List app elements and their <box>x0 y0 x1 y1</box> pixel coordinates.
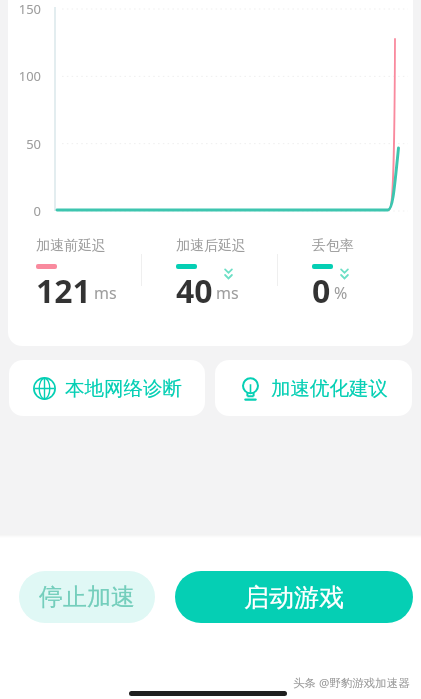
staticText: 加速后延迟 <box>176 237 246 255</box>
staticText: 本地网络诊断 <box>65 376 182 401</box>
staticText: 启动游戏 <box>244 582 344 613</box>
staticText: 丢包率 <box>312 237 354 255</box>
staticText: 150 <box>8 0 41 18</box>
button[interactable]: 停止加速 <box>19 571 155 623</box>
staticText: 0 <box>312 269 331 313</box>
button[interactable]: 加速优化建议 <box>215 360 412 416</box>
button[interactable]: 本地网络诊断 <box>9 360 205 416</box>
staticText: 40 <box>176 269 213 313</box>
staticText: % <box>334 282 348 304</box>
staticText: ms <box>216 282 239 304</box>
staticText: 头条 @野豹游戏加速器 <box>293 675 410 691</box>
staticText: 停止加速 <box>39 582 135 612</box>
staticText: 50 <box>8 135 41 153</box>
staticText: 加速前延迟 <box>36 237 106 255</box>
staticText: 100 <box>8 67 41 85</box>
staticText: 0 <box>8 202 41 220</box>
staticText: 121 <box>36 269 91 313</box>
staticText: ms <box>94 282 117 304</box>
button[interactable]: 启动游戏 <box>175 571 413 623</box>
staticText: 加速优化建议 <box>271 376 388 401</box>
